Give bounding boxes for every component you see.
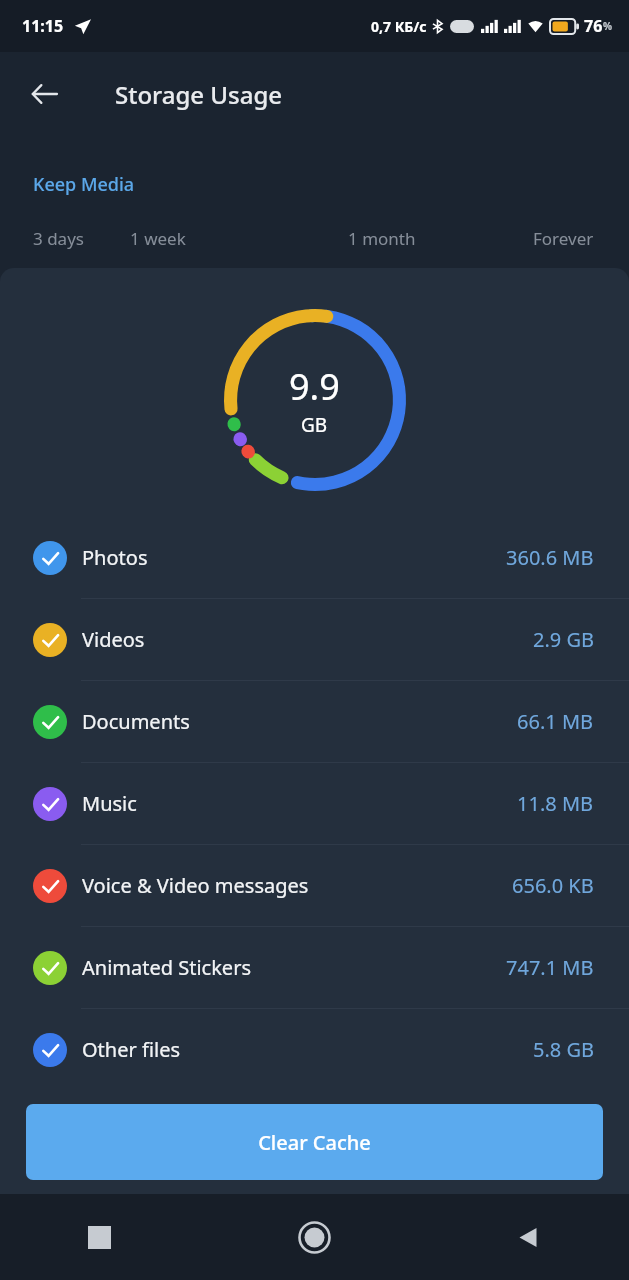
button[interactable]: Music: [0, 763, 629, 844]
staticText: 66.1 MB: [517, 708, 594, 735]
staticText: Other files: [82, 1036, 180, 1063]
staticText: GB: [301, 412, 328, 438]
button[interactable]: Other files: [0, 1009, 629, 1090]
button[interactable]: Back: [22, 71, 68, 117]
staticText: 76: [584, 15, 603, 37]
staticText: 2.9 GB: [533, 626, 594, 653]
staticText: %: [603, 19, 613, 33]
button[interactable]: Home: [209, 1194, 419, 1280]
button[interactable]: Back: [419, 1194, 629, 1280]
button[interactable]: Forever: [469, 221, 629, 255]
button[interactable]: 3 days: [0, 221, 130, 255]
staticText: Voice & Video messages: [82, 872, 309, 899]
staticText: 1 month: [348, 227, 416, 250]
staticText: 5.8 GB: [533, 1036, 594, 1063]
button[interactable]: Documents: [0, 681, 629, 762]
button[interactable]: 1 month: [295, 221, 469, 255]
staticText: 3 days: [33, 227, 84, 250]
button[interactable]: Animated Stickers: [0, 927, 629, 1008]
button[interactable]: Clear Cache: [26, 1104, 603, 1180]
staticText: Clear Cache: [258, 1129, 371, 1156]
button[interactable]: 1 week: [130, 221, 295, 255]
staticText: 11:15: [22, 15, 64, 37]
staticText: Music: [82, 790, 137, 817]
staticText: Animated Stickers: [82, 954, 251, 981]
staticText: Forever: [533, 227, 594, 250]
staticText: 1 week: [130, 227, 186, 250]
staticText: Documents: [82, 708, 190, 735]
staticText: 747.1 MB: [506, 954, 594, 981]
staticText: Photos: [82, 544, 148, 571]
button[interactable]: Photos: [0, 517, 629, 598]
button[interactable]: Voice & Video messages: [0, 845, 629, 926]
button[interactable]: Videos: [0, 599, 629, 680]
staticText: 656.0 KB: [512, 872, 594, 899]
staticText: 0,7 КБ/с: [371, 17, 427, 36]
button[interactable]: Recents: [0, 1194, 209, 1280]
staticText: Videos: [82, 626, 145, 653]
staticText: 9.9: [289, 362, 340, 411]
staticText: Storage Usage: [115, 78, 283, 111]
staticText: 11.8 MB: [517, 790, 594, 817]
staticText: Keep Media: [33, 172, 135, 197]
staticText: 360.6 MB: [506, 544, 594, 571]
